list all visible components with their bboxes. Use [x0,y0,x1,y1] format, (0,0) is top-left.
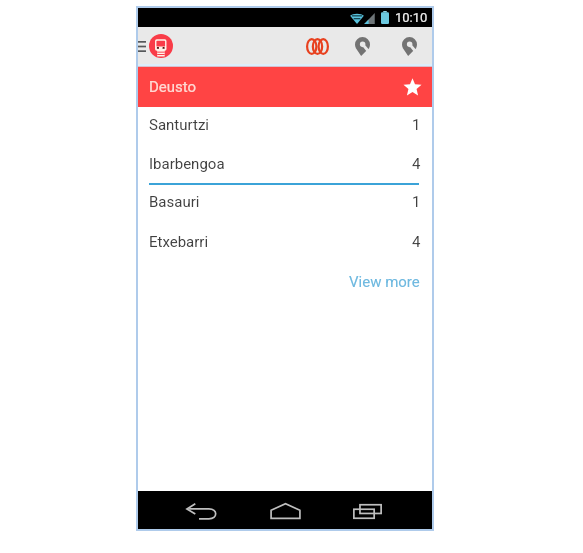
button[interactable]: Back [179,493,223,531]
staticText: Ibarbengoa [149,155,225,173]
button[interactable]: Open navigation menu [138,29,149,63]
staticText: 4 [412,155,421,173]
staticText: 1 [412,193,421,211]
button[interactable]: Santurtzi [138,107,432,146]
button[interactable]: Ibarbengoa [138,146,432,185]
staticText: Etxebarri [149,233,209,251]
button[interactable]: View more [349,273,420,291]
button[interactable]: Home [263,492,307,530]
button[interactable]: Basauri [138,185,432,224]
staticText: 10:10 [395,10,428,25]
staticText: 4 [412,233,421,251]
button[interactable]: Deusto [138,67,432,107]
button[interactable]: Remove from favourites [397,72,427,102]
staticText: 1 [412,116,421,134]
staticText: Basauri [149,193,200,211]
button[interactable]: Lines [301,30,333,62]
staticText: Deusto [149,78,197,96]
button[interactable]: Map [393,30,425,62]
button[interactable]: Nearby stations [346,30,378,62]
button[interactable]: Recent apps [345,492,389,530]
button[interactable]: Etxebarri [138,224,432,263]
staticText: Santurtzi [149,116,209,134]
button[interactable]: Metro Bilbao [146,31,176,61]
